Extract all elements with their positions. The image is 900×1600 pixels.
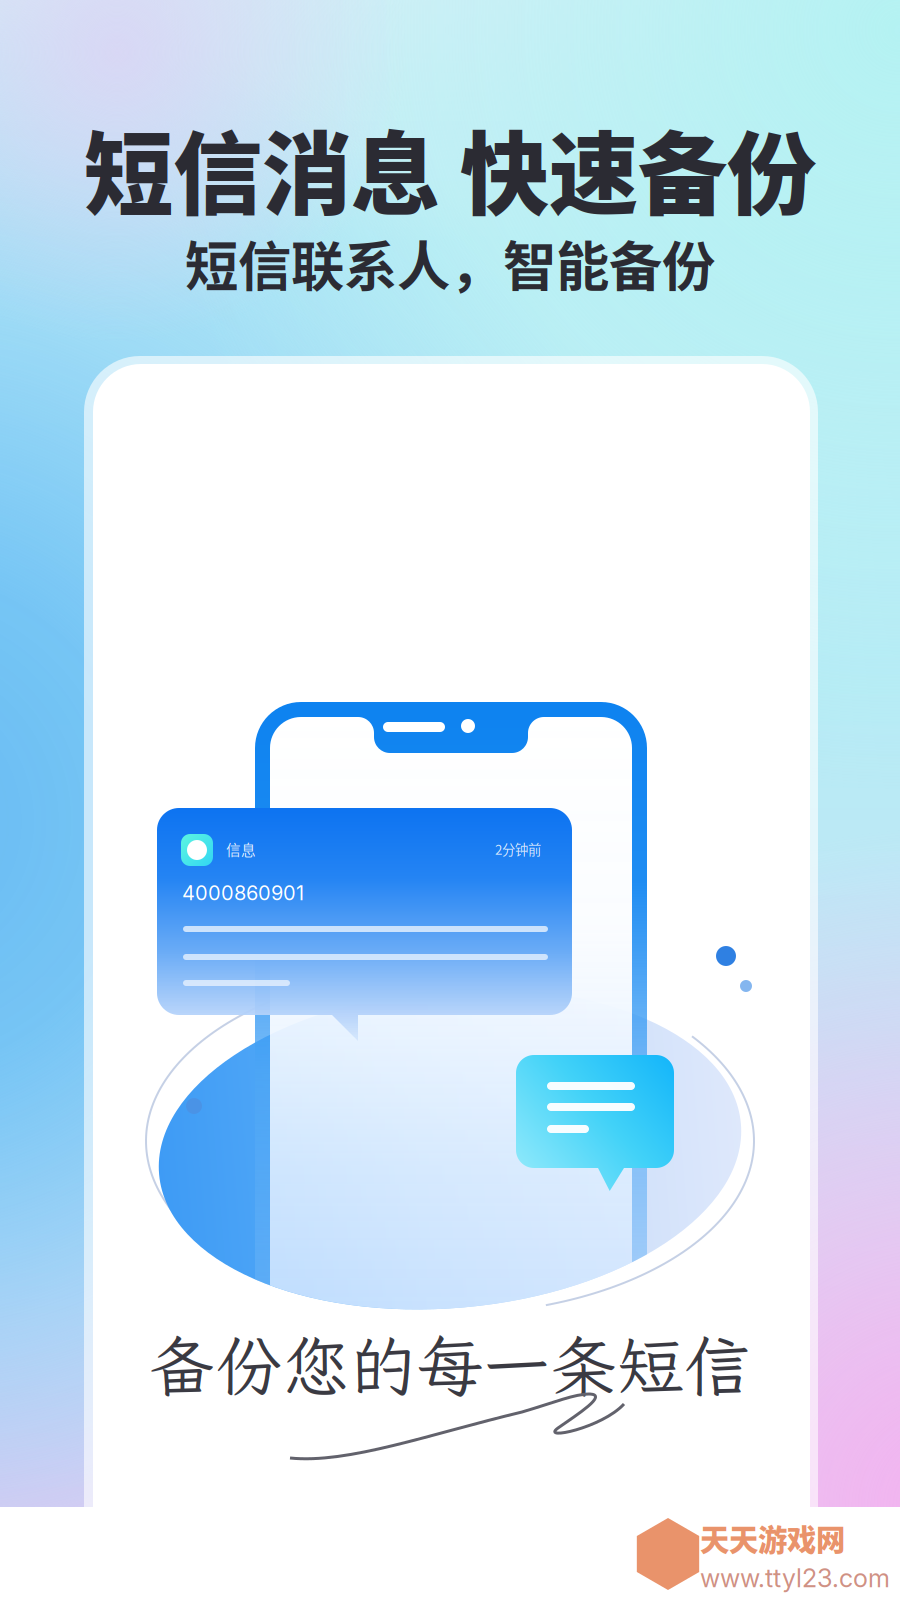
staticText: 信息: [226, 838, 256, 860]
staticText: 短信联系人，智能备份: [185, 224, 715, 302]
staticText: 天天游戏网: [700, 1517, 845, 1559]
staticText: 短信消息 快速备份: [84, 103, 816, 233]
staticText: 备份您的每一条短信: [148, 1321, 751, 1409]
staticText: www.ttyl23.com: [700, 1563, 890, 1593]
staticText: 2分钟前: [495, 839, 541, 859]
staticText: 4000860901: [182, 881, 304, 905]
